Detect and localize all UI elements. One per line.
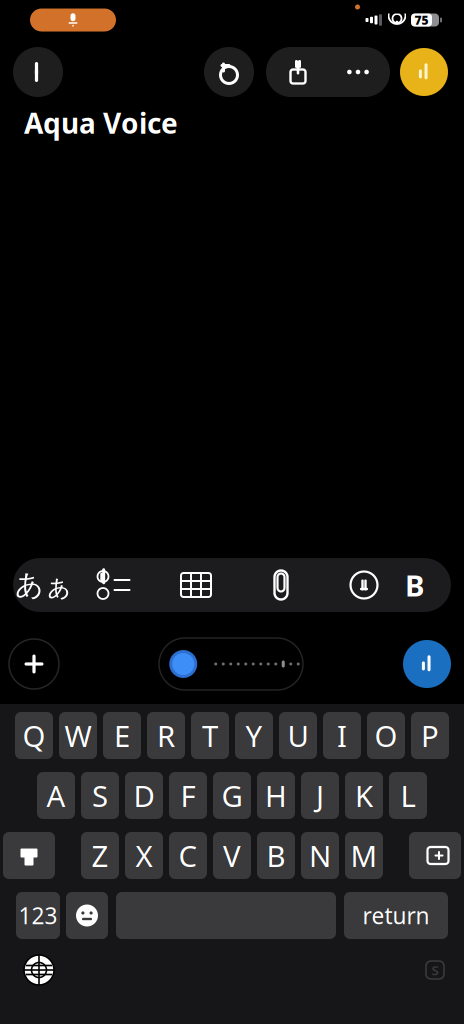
staticText: N [309, 836, 331, 875]
staticText: W [64, 716, 91, 755]
button[interactable]: Shift [3, 832, 55, 879]
staticText: S [431, 961, 438, 979]
button[interactable]: Attach [239, 558, 323, 612]
button[interactable]: E [103, 712, 141, 759]
staticText: P [421, 716, 439, 755]
button[interactable]: H [257, 772, 295, 819]
staticText: F [180, 776, 195, 815]
button[interactable]: U [279, 712, 317, 759]
button[interactable]: Accept dictation [403, 640, 451, 688]
staticText: Y [245, 716, 262, 755]
button[interactable]: L [389, 772, 427, 819]
staticText: T [202, 716, 218, 755]
staticText: L [400, 776, 415, 815]
button[interactable]: N [301, 832, 339, 879]
button[interactable]: T [191, 712, 229, 759]
staticText: あぁ [15, 568, 73, 602]
button[interactable]: I [323, 712, 361, 759]
button[interactable]: Text format [13, 558, 75, 612]
staticText: I [337, 716, 347, 755]
button[interactable]: X [125, 832, 163, 879]
button[interactable]: K [345, 772, 383, 819]
button[interactable]: Cancel dictation [9, 639, 59, 689]
button[interactable]: Markup [323, 558, 405, 612]
button[interactable]: D [125, 772, 163, 819]
button[interactable]: C [169, 832, 207, 879]
button[interactable]: R [147, 712, 185, 759]
button[interactable]: Undo [204, 47, 254, 97]
staticText: M [350, 836, 377, 875]
staticText: Aqua Voice [24, 104, 178, 142]
staticText: A [46, 776, 65, 815]
staticText: Z [91, 836, 108, 875]
staticText: O [374, 716, 397, 755]
button[interactable]: return [344, 892, 448, 939]
staticText: X [135, 836, 152, 875]
button[interactable]: S [81, 772, 119, 819]
button[interactable]: Checklist [75, 558, 153, 612]
button[interactable]: Bold [405, 558, 451, 612]
button[interactable]: Back [13, 47, 63, 97]
button[interactable]: Q [15, 712, 53, 759]
button[interactable]: Share [268, 47, 328, 97]
staticText: 123 [18, 900, 57, 930]
staticText: H [265, 776, 287, 815]
staticText: B [405, 565, 425, 604]
button[interactable]: Table [153, 558, 239, 612]
button[interactable]: 123 [16, 892, 60, 939]
button[interactable]: Next keyboard [23, 954, 55, 986]
button[interactable]: W [59, 712, 97, 759]
button[interactable]: G [213, 772, 251, 819]
button[interactable]: Z [81, 832, 119, 879]
button[interactable]: B [257, 832, 295, 879]
button[interactable]: V [213, 832, 251, 879]
staticText: D [133, 776, 154, 815]
button[interactable]: Scan text [420, 955, 450, 985]
button[interactable]: More [328, 47, 388, 97]
staticText: G [221, 776, 242, 815]
staticText: B [266, 836, 285, 875]
button[interactable]: P [411, 712, 449, 759]
button[interactable]: Delete [409, 832, 461, 879]
button[interactable]: Y [235, 712, 273, 759]
button[interactable]: J [301, 772, 339, 819]
staticText: Q [22, 716, 45, 755]
staticText: J [316, 776, 324, 815]
staticText: V [223, 836, 241, 875]
staticText: C [178, 836, 197, 875]
button[interactable]: A [37, 772, 75, 819]
button[interactable]: M [345, 832, 383, 879]
button[interactable]: O [367, 712, 405, 759]
staticText: return [362, 900, 429, 930]
button[interactable]: Done [400, 48, 448, 96]
staticText: K [355, 776, 373, 815]
staticText: U [287, 716, 308, 755]
staticText: S [92, 776, 108, 815]
staticText: 75 [414, 12, 428, 28]
button[interactable]: F [169, 772, 207, 819]
staticText: E [114, 716, 130, 755]
button[interactable]: Emoji [66, 892, 108, 939]
staticText: R [157, 716, 175, 755]
